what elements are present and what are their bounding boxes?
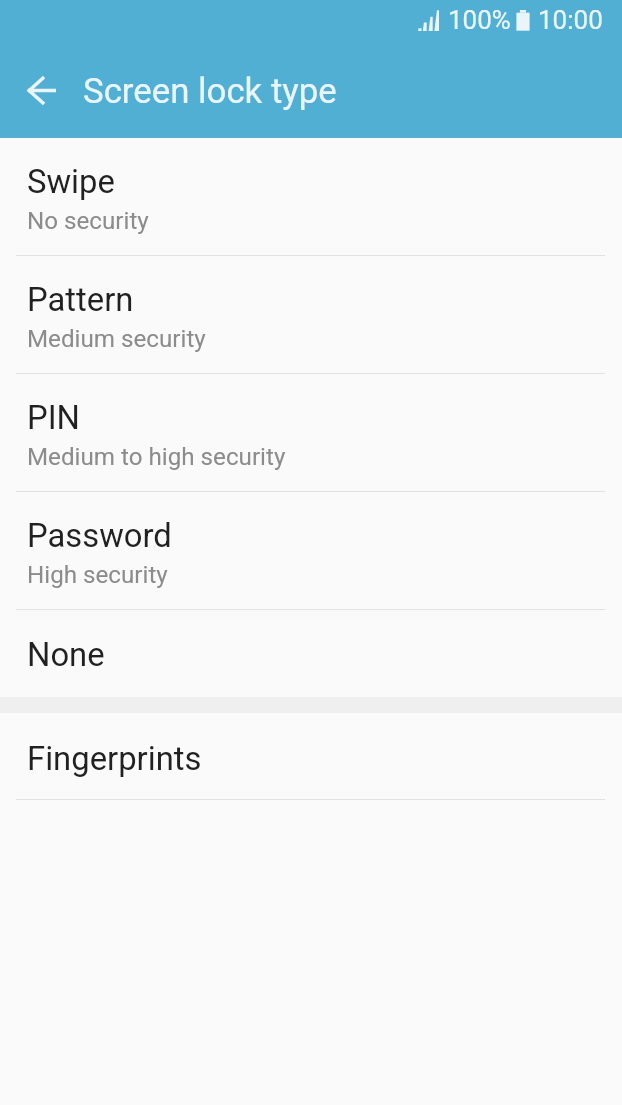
staticText: Swipe <box>27 163 115 201</box>
button[interactable]: Swipe <box>0 138 622 256</box>
staticText: Medium security <box>27 325 206 353</box>
staticText: High security <box>27 561 168 589</box>
staticText: None <box>27 636 105 674</box>
button[interactable]: Fingerprints <box>0 713 622 800</box>
staticText: Fingerprints <box>27 740 202 778</box>
button[interactable]: PIN <box>0 374 622 492</box>
staticText: Password <box>27 517 172 555</box>
button[interactable]: Pattern <box>0 256 622 374</box>
staticText: 10:00 <box>538 5 603 35</box>
button[interactable]: Navigate up <box>14 62 70 118</box>
staticText: No security <box>27 207 149 235</box>
staticText: Screen lock type <box>83 71 337 112</box>
staticText: 100% <box>448 5 511 35</box>
button[interactable]: None <box>0 610 622 697</box>
staticText: PIN <box>27 399 81 437</box>
staticText: Medium to high security <box>27 443 286 471</box>
staticText: Pattern <box>27 281 134 319</box>
button[interactable]: Password <box>0 492 622 610</box>
